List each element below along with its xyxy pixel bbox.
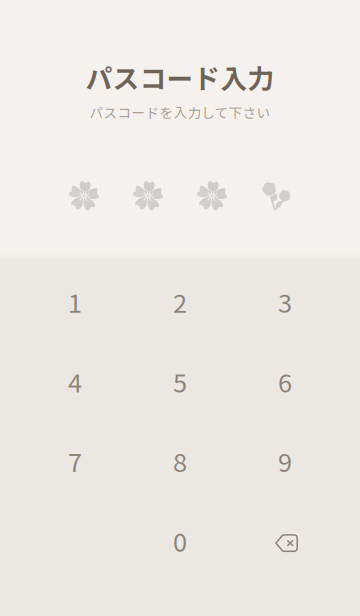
- button[interactable]: 6: [232, 342, 337, 421]
- button[interactable]: 1: [22, 262, 127, 342]
- button[interactable]: 9: [232, 421, 337, 501]
- button[interactable]: 3: [232, 262, 337, 342]
- staticText: 5: [173, 363, 187, 400]
- staticText: 4: [68, 363, 82, 400]
- staticText: 8: [173, 443, 187, 479]
- button[interactable]: 0: [127, 501, 232, 580]
- staticText: 0: [173, 522, 187, 559]
- staticText: パスコード入力: [85, 58, 274, 96]
- button[interactable]: Delete: [232, 501, 337, 580]
- staticText: 9: [278, 443, 292, 479]
- button[interactable]: 8: [127, 421, 232, 501]
- staticText: 6: [278, 363, 292, 400]
- button[interactable]: 4: [22, 342, 127, 421]
- staticText: 2: [173, 283, 187, 320]
- staticText: 1: [68, 283, 82, 320]
- button[interactable]: 2: [127, 262, 232, 342]
- staticText: 3: [278, 283, 292, 320]
- staticText: 7: [68, 443, 82, 479]
- button[interactable]: 7: [22, 421, 127, 501]
- staticText: パスコードを入力して下さい: [89, 102, 270, 122]
- button[interactable]: 5: [127, 342, 232, 421]
